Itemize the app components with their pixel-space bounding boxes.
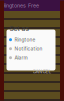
staticText: CANCEL — [32, 69, 51, 74]
staticText: Alarm — [14, 55, 27, 61]
button[interactable]: Notification — [6, 46, 55, 52]
staticText: Notification — [14, 46, 42, 52]
button[interactable]: Alarm — [6, 55, 55, 61]
button[interactable]: Ringtone — [6, 37, 55, 43]
staticText: Set as — [9, 25, 29, 33]
staticText: Ringtones Free — [2, 2, 39, 9]
staticText: Ringtone — [14, 37, 35, 43]
button[interactable]: CANCEL — [32, 69, 55, 78]
